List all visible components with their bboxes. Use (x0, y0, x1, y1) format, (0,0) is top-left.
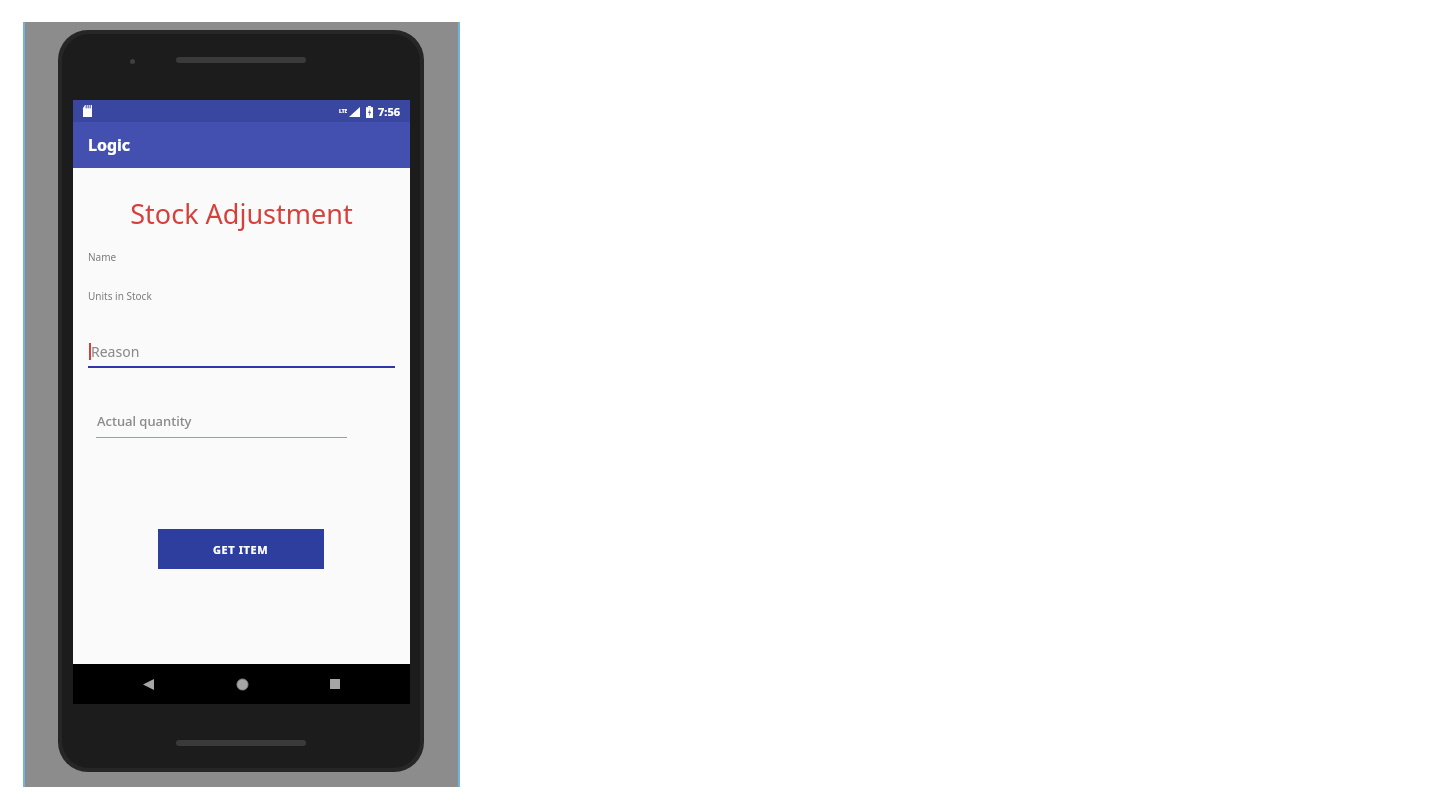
staticText: 7:56 (378, 104, 400, 119)
staticText: Name (88, 250, 117, 264)
button[interactable]: Actual quantity (96, 410, 347, 438)
staticText: LTE (339, 108, 348, 115)
button[interactable]: Home (225, 667, 259, 701)
staticText: GET ITEM (213, 542, 269, 557)
button[interactable]: Back (131, 667, 165, 701)
staticText: Reason (91, 342, 140, 361)
button[interactable]: Recent apps (318, 667, 352, 701)
staticText: Logic (88, 134, 131, 156)
button[interactable]: GET ITEM (158, 529, 324, 569)
staticText: Stock Adjustment (87, 195, 396, 232)
staticText: Units in Stock (88, 289, 152, 303)
button[interactable]: Reason (88, 340, 395, 368)
staticText: Actual quantity (97, 412, 192, 430)
